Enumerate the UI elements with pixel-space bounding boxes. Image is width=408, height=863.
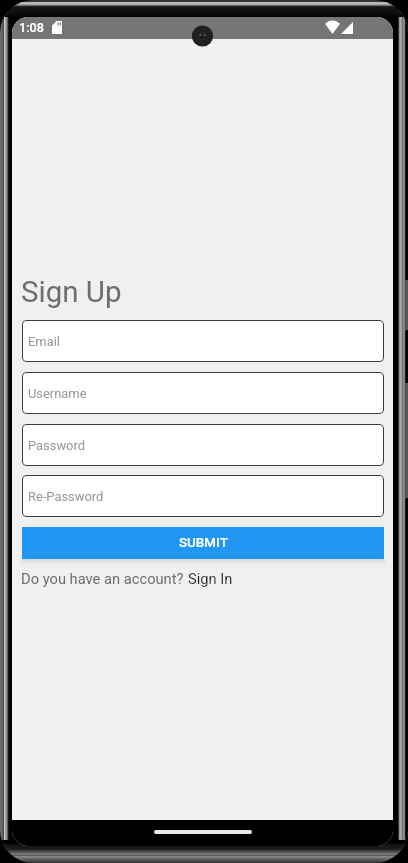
staticText: Re-Password <box>28 489 104 504</box>
staticText: Username <box>28 386 87 401</box>
staticText: SUBMIT <box>179 535 228 551</box>
button[interactable]: SUBMIT <box>22 527 384 559</box>
staticText: Do you have an account? <box>21 570 188 587</box>
staticText: 1:08 <box>19 20 44 35</box>
button[interactable]: Username <box>22 372 384 414</box>
button[interactable]: Sign In <box>188 570 233 587</box>
button[interactable]: Email <box>22 320 384 362</box>
staticText: Sign Up <box>21 275 122 310</box>
staticText: Email <box>28 334 60 349</box>
staticText: Password <box>28 438 85 453</box>
button[interactable]: Password <box>22 424 384 466</box>
other: Front camera <box>0 0 408 863</box>
button[interactable]: Re-Password <box>22 475 384 517</box>
